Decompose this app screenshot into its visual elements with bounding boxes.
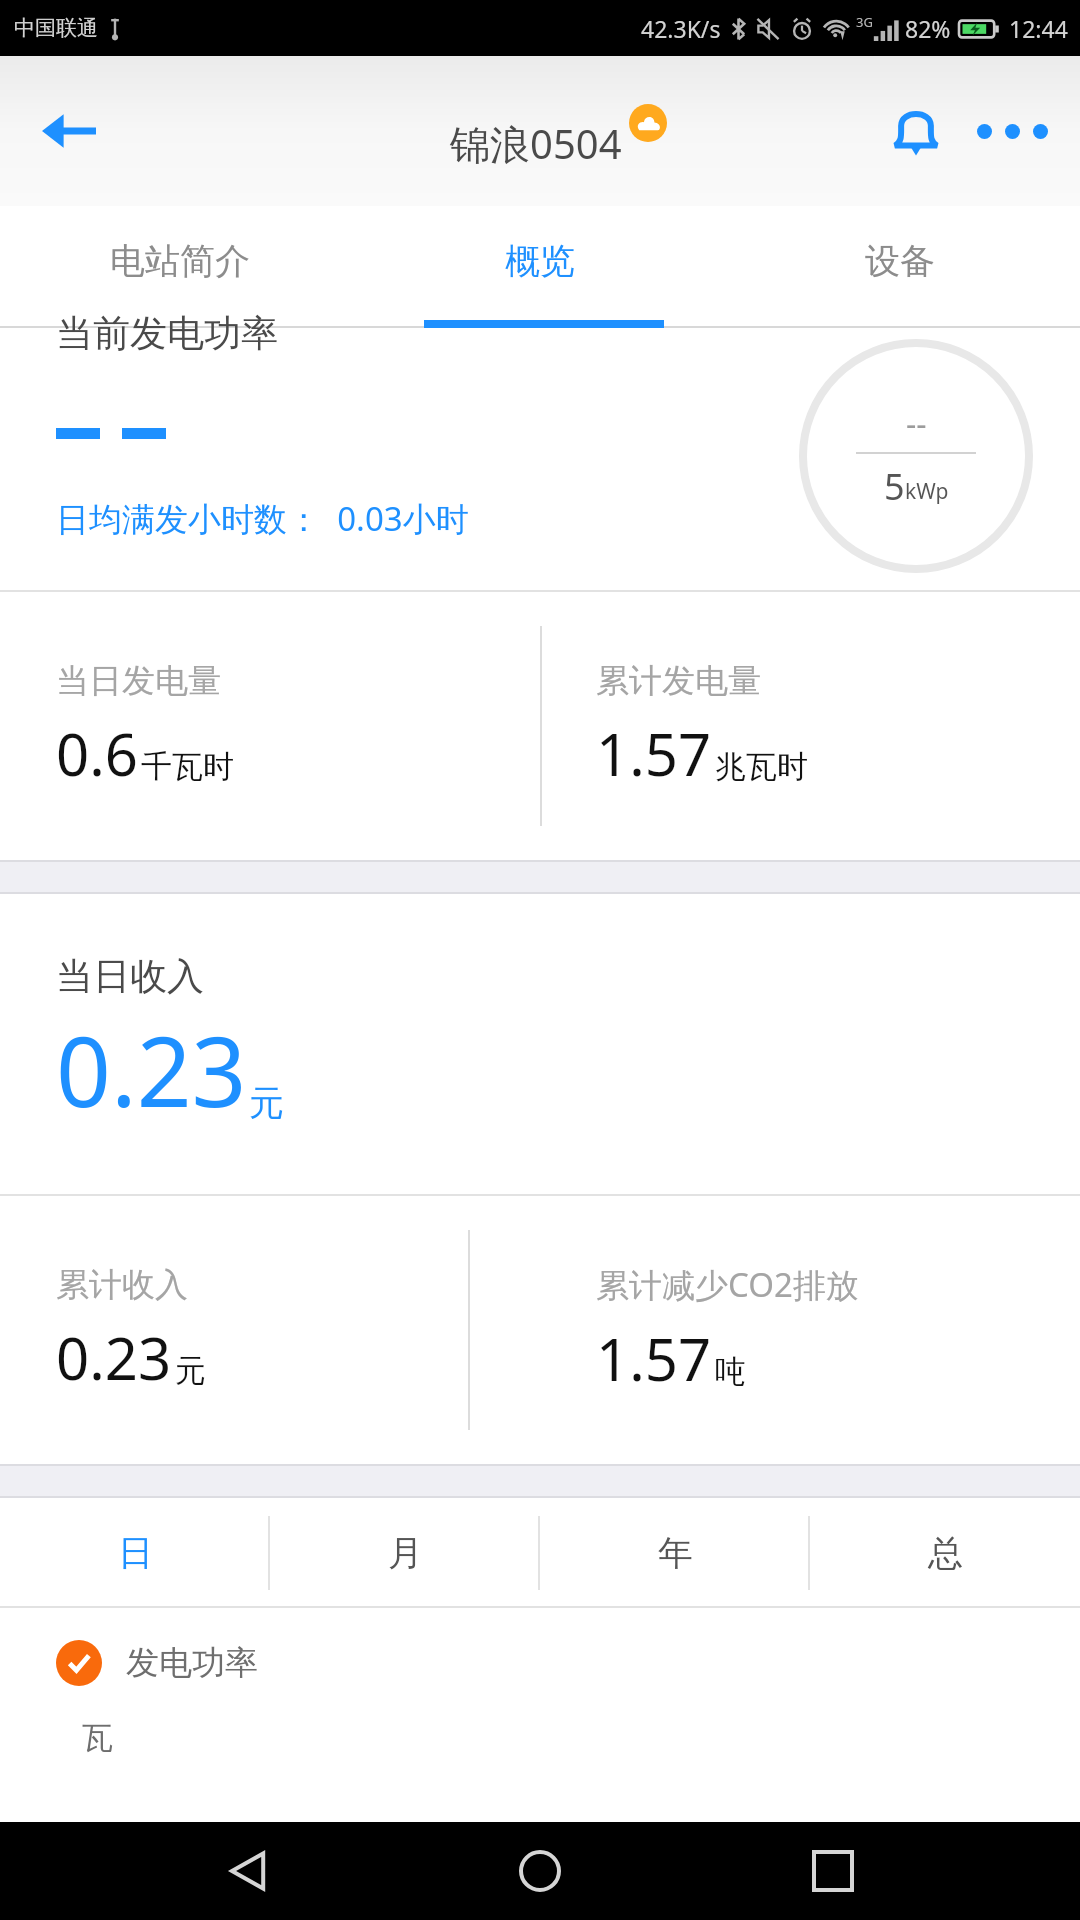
staticText: 5 — [884, 462, 905, 511]
button[interactable]: 当日发电量 — [0, 592, 540, 860]
button[interactable]: 累计收入 — [0, 1196, 540, 1464]
staticText: 吨 — [715, 1352, 746, 1391]
button[interactable]: 总 — [810, 1498, 1080, 1608]
button[interactable]: 发电功率 — [0, 1608, 1080, 1718]
staticText: 累计发电量 — [596, 660, 761, 702]
button[interactable]: Notifications — [870, 85, 962, 177]
staticText: 电站简介 — [110, 239, 250, 283]
staticText: 当日发电量 — [56, 660, 221, 702]
button[interactable]: Home — [495, 1826, 585, 1916]
staticText: 12:44 — [1009, 13, 1068, 44]
staticText: kWp — [905, 477, 949, 506]
button[interactable]: 设备 — [720, 206, 1080, 328]
staticText: 42.3K/s — [641, 13, 721, 44]
staticText: 月 — [388, 1531, 423, 1575]
button[interactable]: Back — [26, 88, 112, 174]
button[interactable]: 累计减少CO2排放 — [540, 1196, 1080, 1464]
staticText: 兆瓦时 — [715, 747, 808, 786]
staticText: 设备 — [865, 239, 935, 283]
staticText: 发电功率 — [126, 1642, 258, 1684]
staticText: 1.57 — [596, 1319, 712, 1398]
staticText: 0.23 — [56, 1318, 172, 1397]
staticText: 元 — [249, 1081, 284, 1125]
staticText: 元 — [175, 1351, 206, 1390]
staticText: 0.6 — [56, 714, 138, 793]
staticText: 当前发电功率 — [56, 310, 278, 357]
staticText: 82% — [905, 13, 951, 44]
staticText: 锦浪0504 — [450, 116, 622, 171]
staticText: 0.23 — [56, 1004, 247, 1135]
button[interactable]: Back — [203, 1826, 293, 1916]
staticText: 日均满发小时数： 0.03小时 — [56, 496, 469, 541]
staticText: 千瓦时 — [141, 747, 234, 786]
button[interactable]: 累计发电量 — [540, 592, 1080, 860]
button[interactable]: 当日收入 — [0, 894, 1080, 1194]
button[interactable]: 月 — [270, 1498, 540, 1608]
staticText: 当日收入 — [56, 953, 204, 1000]
staticText: 累计减少CO2排放 — [596, 1262, 859, 1307]
staticText: 总 — [928, 1531, 963, 1575]
button[interactable]: Recent apps — [788, 1826, 878, 1916]
staticText: 瓦 — [82, 1718, 113, 1757]
staticText: -- — [906, 402, 927, 446]
button[interactable]: 年 — [540, 1498, 810, 1608]
button[interactable]: More options — [966, 85, 1058, 177]
staticText: 日 — [118, 1531, 153, 1575]
button[interactable]: 日 — [0, 1498, 270, 1608]
staticText: 概览 — [505, 239, 575, 283]
staticText: 3G — [856, 13, 873, 31]
staticText: 年 — [658, 1531, 693, 1575]
staticText: 累计收入 — [56, 1264, 188, 1306]
staticText: 中国联通 — [14, 15, 98, 41]
button[interactable]: 电站简介 — [0, 206, 360, 328]
button[interactable]: 概览 — [360, 206, 720, 328]
staticText: 1.57 — [596, 714, 712, 793]
